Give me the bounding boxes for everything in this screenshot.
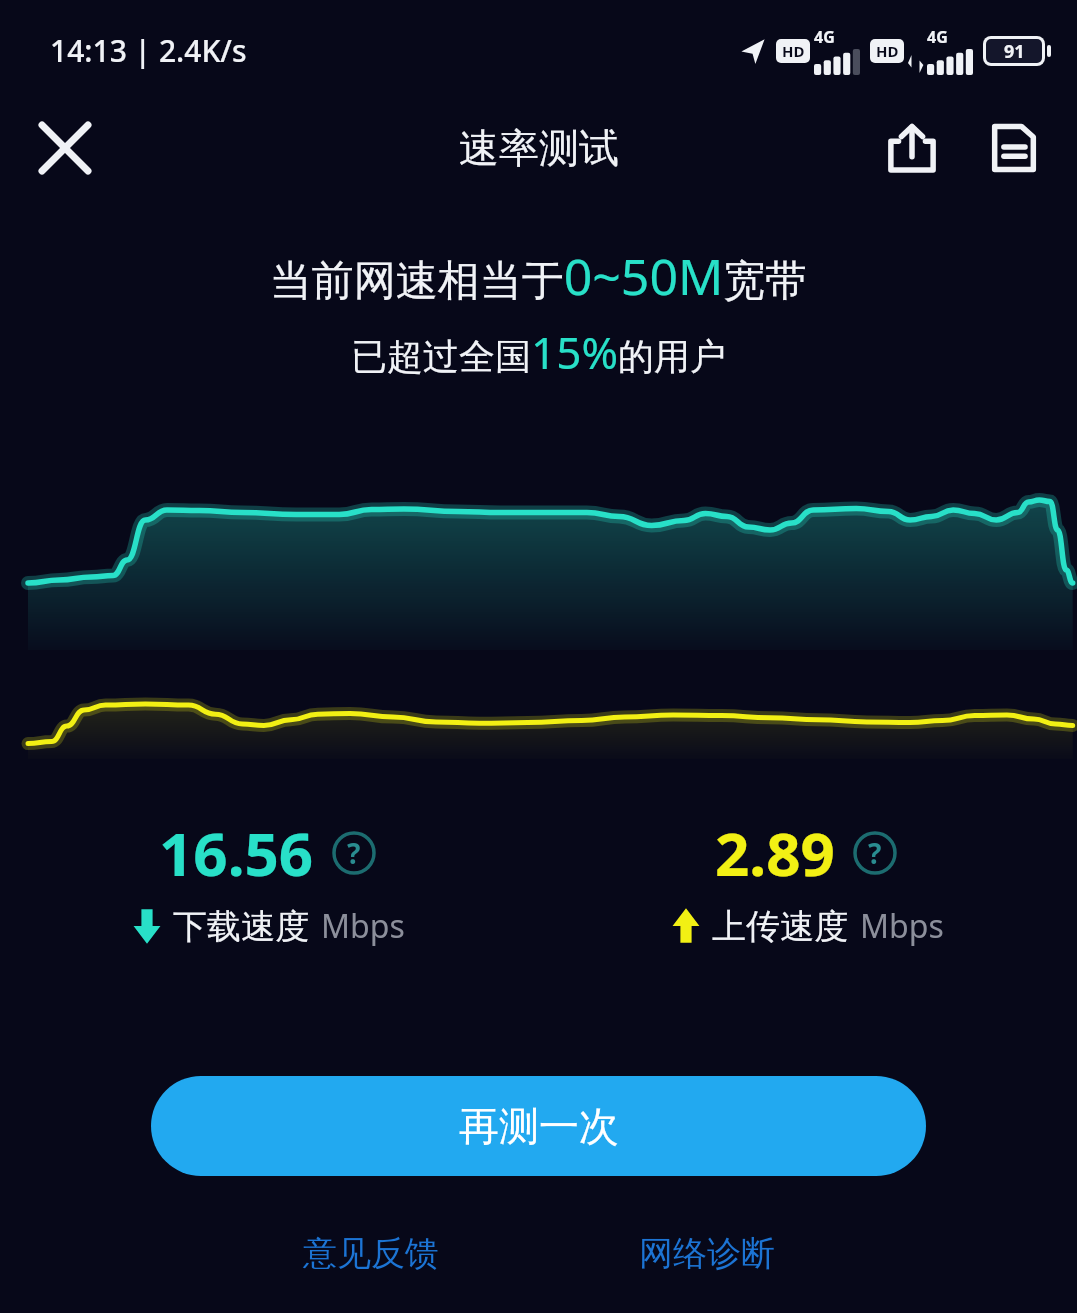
- button[interactable]: Help about 上传速度: [849, 827, 901, 879]
- button[interactable]: Help about 下载速度: [328, 827, 380, 879]
- staticText: 16.56: [159, 812, 314, 894]
- button[interactable]: Report: [971, 105, 1057, 191]
- staticText: 下载速度: [173, 905, 309, 948]
- staticText: 速率测试: [459, 123, 619, 173]
- button[interactable]: Share: [869, 105, 955, 191]
- staticText: HD: [876, 41, 899, 61]
- staticText: 再测一次: [459, 1101, 619, 1151]
- staticText: Mbps: [860, 904, 944, 948]
- button[interactable]: 意见反馈: [273, 1222, 469, 1285]
- staticText: 当前网速相当于0~50M宽带: [0, 242, 1077, 310]
- staticText: ?: [347, 834, 361, 872]
- staticText: 网络诊断: [639, 1232, 775, 1275]
- staticText: 2.89: [715, 812, 835, 894]
- staticText: 意见反馈: [303, 1232, 439, 1275]
- staticText: ?: [868, 834, 882, 872]
- staticText: 上传速度: [712, 905, 848, 948]
- button[interactable]: 网络诊断: [609, 1222, 805, 1285]
- button[interactable]: Close: [22, 105, 108, 191]
- button[interactable]: 再测一次: [151, 1076, 926, 1176]
- staticText: 91: [1004, 39, 1025, 63]
- staticText: 14:13 | 2.4K/s: [50, 30, 247, 71]
- staticText: 4G: [814, 26, 835, 48]
- staticText: 已超过全国15%的用户: [0, 322, 1077, 382]
- staticText: HD: [782, 41, 805, 61]
- staticText: 4G: [927, 26, 948, 48]
- staticText: Mbps: [321, 904, 405, 948]
